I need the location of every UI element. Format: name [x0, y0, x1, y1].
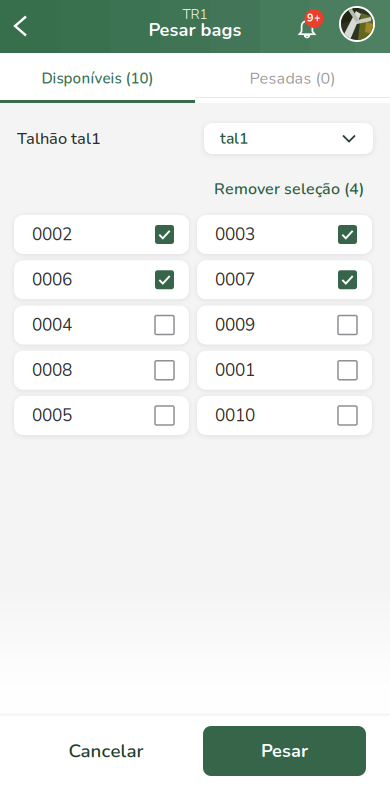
staticText: 0007 — [215, 268, 255, 291]
button[interactable]: 0010 — [197, 396, 372, 435]
button[interactable]: Pesar — [203, 726, 366, 776]
button[interactable]: tal1 — [204, 123, 373, 154]
staticText: Remover seleção (4) — [214, 178, 364, 200]
button[interactable]: Pesadas (0) — [195, 53, 390, 103]
button[interactable]: Remover seleção (4) — [214, 179, 390, 199]
button[interactable]: 0009 — [197, 305, 372, 344]
button[interactable]: 0001 — [197, 351, 372, 390]
staticText: tal1 — [220, 128, 248, 149]
staticText: 0009 — [215, 313, 255, 337]
button[interactable]: 0004 — [14, 305, 189, 344]
staticText: Cancelar — [68, 738, 143, 764]
button[interactable]: Voltar — [0, 4, 42, 48]
button[interactable]: 0002 — [14, 215, 189, 254]
button[interactable]: 0003 — [197, 215, 372, 254]
button[interactable]: Cancelar — [26, 716, 186, 796]
staticText: TR1 — [182, 5, 207, 24]
staticText: 0004 — [32, 313, 72, 337]
staticText: 0001 — [215, 358, 255, 382]
button[interactable]: Notificações — [296, 2, 336, 46]
button[interactable]: 0006 — [14, 260, 189, 299]
staticText: 0006 — [32, 268, 72, 291]
staticText: Talhão tal1 — [17, 127, 101, 150]
button[interactable]: 0007 — [197, 260, 372, 299]
staticText: Disponíveis (10) — [41, 68, 153, 89]
staticText: Pesar bags — [148, 18, 241, 42]
staticText: Pesadas (0) — [249, 67, 335, 89]
button[interactable]: Disponíveis (10) — [0, 53, 195, 103]
staticText: 0008 — [32, 358, 72, 382]
staticText: 0010 — [215, 404, 255, 427]
staticText: Pesar — [261, 739, 308, 763]
button[interactable]: 0005 — [14, 396, 189, 435]
staticText: 0002 — [32, 223, 72, 246]
button[interactable]: Perfil — [337, 2, 377, 46]
staticText: 0003 — [215, 223, 255, 246]
staticText: 9+ — [307, 10, 321, 25]
staticText: 0005 — [32, 404, 72, 427]
button[interactable]: 0008 — [14, 351, 189, 390]
